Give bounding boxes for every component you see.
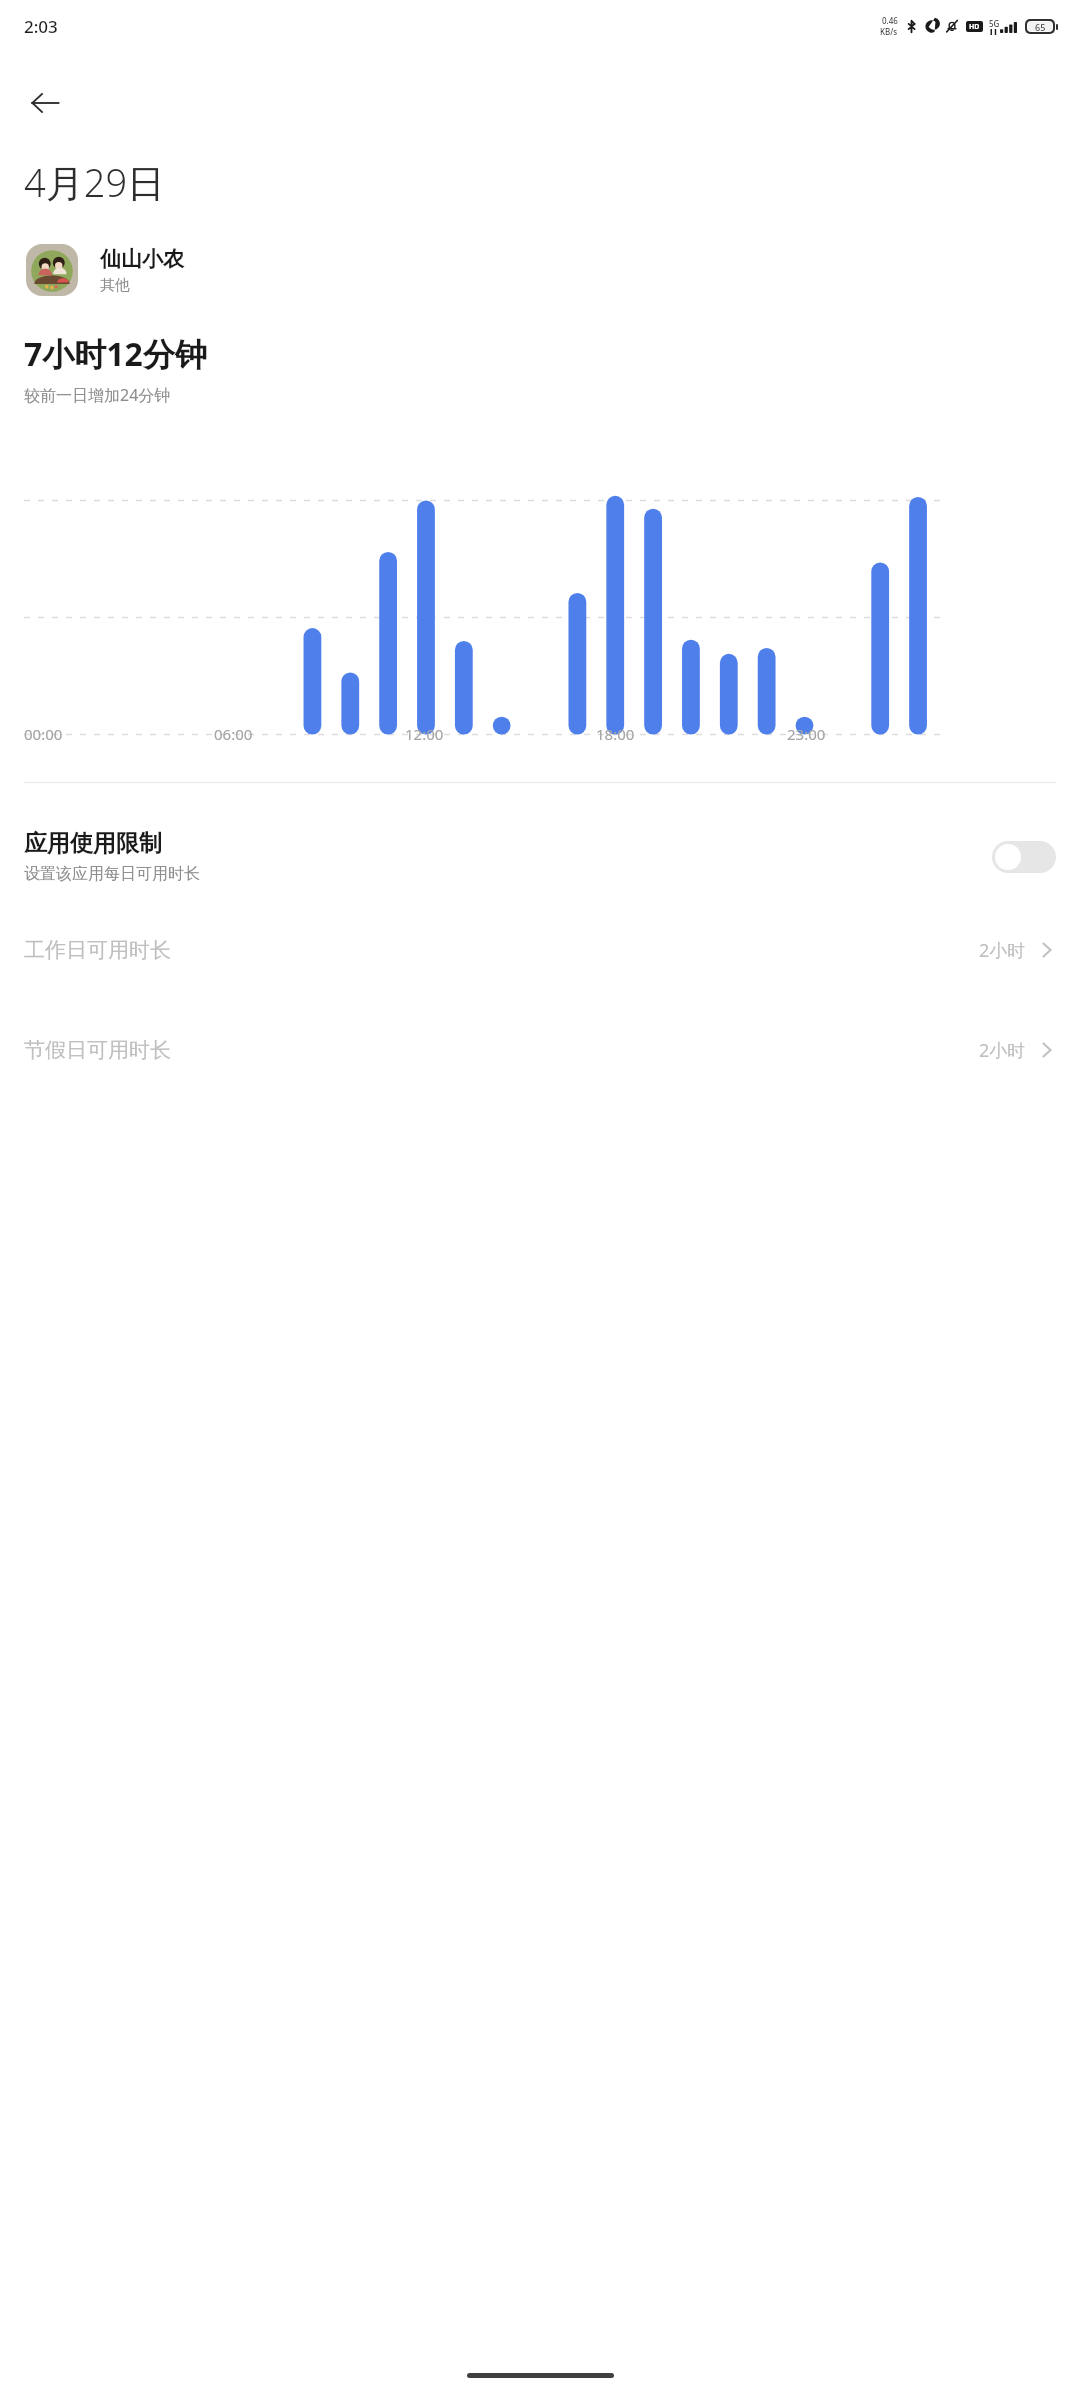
staticText: 2:03 (24, 15, 58, 38)
staticText: 设置该应用每日可用时长 (24, 864, 200, 884)
staticText: 较前一日增加24分钟 (24, 384, 171, 406)
button[interactable]: 工作日可用时长 (0, 900, 1080, 1000)
button[interactable]: 应用使用限制开关 (992, 841, 1056, 873)
staticText: 4月29日 (24, 156, 166, 208)
staticText: 其他 (100, 276, 130, 295)
staticText: 12:00 (405, 724, 596, 744)
staticText: 0.46 (882, 15, 898, 26)
staticText: 2小时 (979, 1038, 1026, 1063)
staticText: 5G (989, 18, 1000, 29)
button[interactable]: Back (18, 76, 72, 130)
staticText: 23:00 (787, 724, 940, 744)
staticText: 2小时 (979, 938, 1026, 963)
button[interactable]: 节假日可用时长 (0, 1000, 1080, 1100)
staticText: 65 (1035, 21, 1046, 32)
staticText: 7小时12分钟 (24, 332, 207, 376)
staticText: 仙山小农 (100, 246, 184, 272)
staticText: 06:00 (214, 724, 405, 744)
staticText: 节假日可用时长 (24, 1037, 979, 1063)
staticText: HD (969, 22, 980, 32)
button[interactable]: 应用使用限制 (0, 813, 1080, 900)
staticText: KB/s (880, 26, 898, 37)
staticText: 18:00 (596, 724, 787, 744)
staticText: 工作日可用时长 (24, 937, 979, 963)
button[interactable]: 仙山小农 (0, 244, 1080, 296)
staticText: 00:00 (24, 724, 214, 744)
staticText: 应用使用限制 (24, 829, 162, 858)
